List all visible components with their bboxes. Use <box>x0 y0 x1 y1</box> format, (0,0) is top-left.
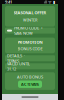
button[interactable]: ACTIVATE <box>18 81 42 88</box>
staticText: AUTO BONUS <box>17 74 43 79</box>
staticText: SEASONAL OFFER <box>13 10 46 15</box>
staticText: ACTIVATE <box>21 82 39 87</box>
staticText: VALID UNTIL 31.12 <box>7 61 31 71</box>
staticText: DETAILS · TERMS <box>7 53 26 63</box>
staticText: WINTER <box>23 17 37 23</box>
staticText: BONUS CODE <box>17 46 42 51</box>
staticText: PROMOTION <box>17 40 42 45</box>
staticText: 9:41 <box>5 0 12 5</box>
staticText: ıll ᯤ ▮ <box>44 0 55 5</box>
staticText: PROMO CODE • SAVE NOW <box>14 25 44 36</box>
